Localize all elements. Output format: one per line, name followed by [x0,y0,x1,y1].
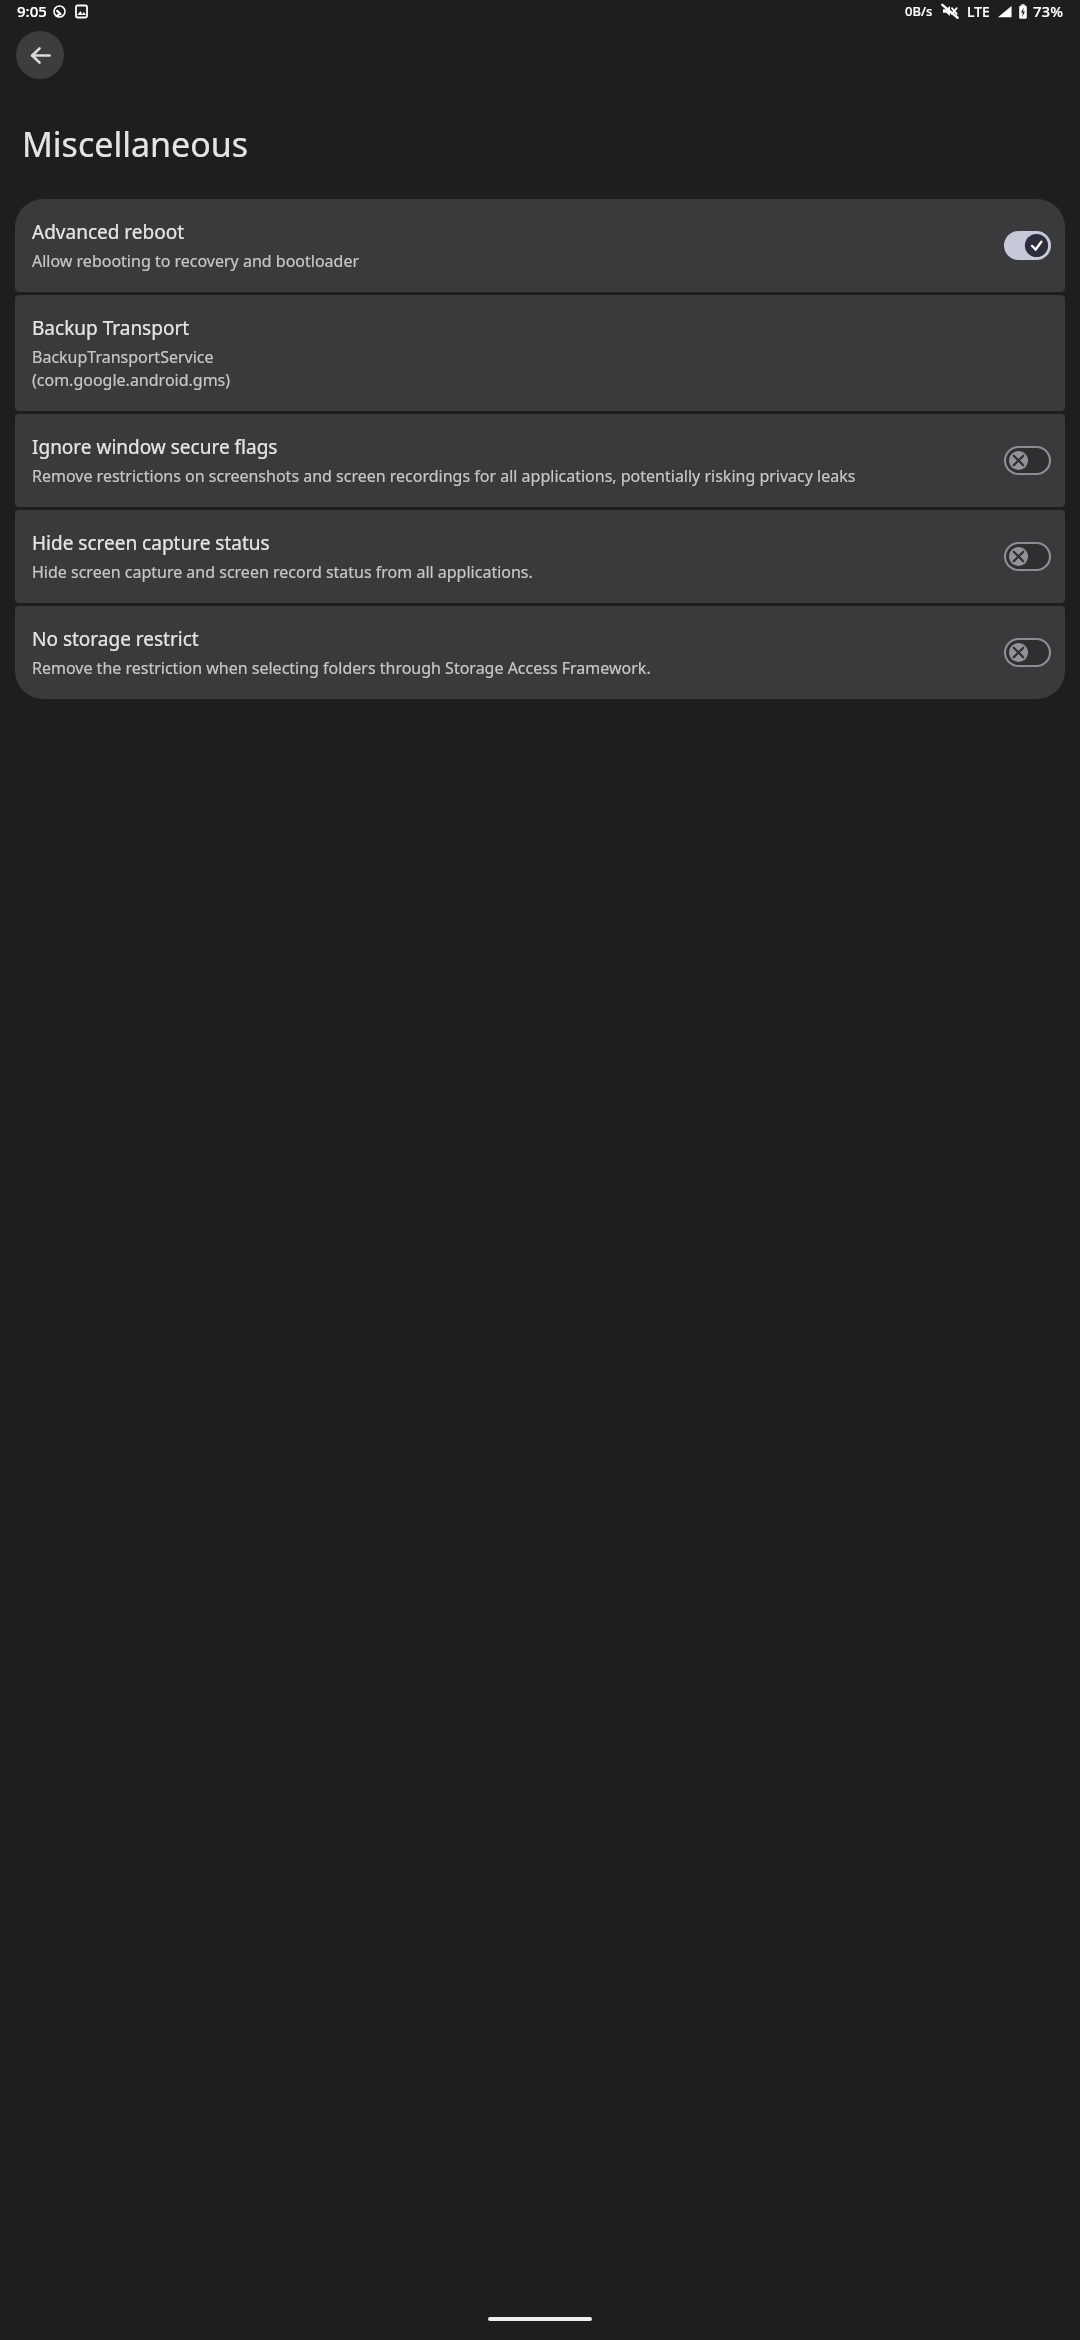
staticText: Hide screen capture and screen record st… [32,561,533,583]
staticText: Allow rebooting to recovery and bootload… [32,250,360,272]
staticText: Backup Transport [32,315,190,341]
button[interactable]: Advanced reboot [15,199,1065,292]
staticText: 9:05 [17,1,47,21]
button[interactable]: Toggle on [1004,231,1051,260]
staticText: No storage restrict [32,626,199,652]
staticText: Advanced reboot [32,219,185,245]
staticText: Ignore window secure flags [32,434,278,460]
staticText: 0B/s [905,2,933,20]
button[interactable]: No storage restrict [15,606,1065,699]
staticText: Remove restrictions on screenshots and s… [32,465,856,487]
button[interactable]: Hide screen capture status [15,510,1065,603]
button[interactable]: Toggle off [1004,638,1051,667]
button[interactable]: Backup Transport [15,295,1065,411]
staticText: Remove the restriction when selecting fo… [32,657,651,679]
staticText: 73% [1033,1,1063,21]
staticText: Miscellaneous [22,121,249,167]
button[interactable]: Toggle off [1004,542,1051,571]
button[interactable]: Toggle off [1004,446,1051,475]
button[interactable]: Ignore window secure flags [15,414,1065,507]
staticText: LTE [967,2,990,21]
staticText: Hide screen capture status [32,530,270,556]
button[interactable]: Back [16,31,64,79]
staticText: BackupTransportService (com.google.andro… [32,346,231,391]
